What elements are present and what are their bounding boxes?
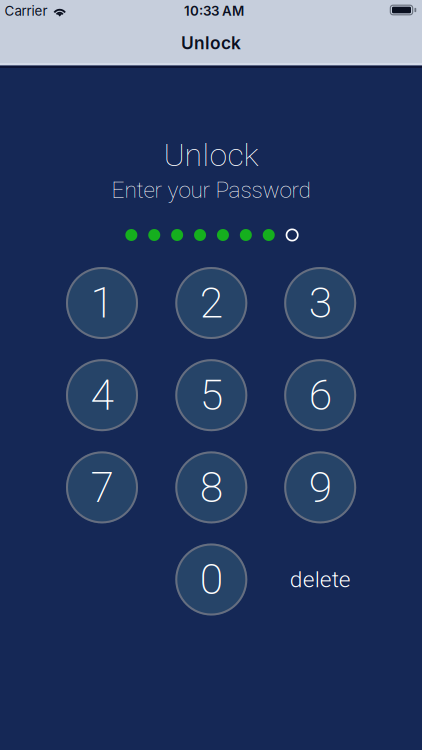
staticText: 6	[309, 370, 332, 420]
button[interactable]: 8	[175, 451, 247, 523]
staticText: 7	[90, 462, 113, 512]
staticText: 5	[200, 370, 223, 420]
button[interactable]: 3	[284, 267, 356, 339]
button[interactable]: 7	[66, 451, 138, 523]
staticText: 9	[309, 462, 332, 512]
staticText: 10:33 AM	[184, 3, 244, 19]
button[interactable]: 0	[175, 543, 247, 615]
button[interactable]: 5	[175, 359, 247, 431]
staticText: Enter your Password	[111, 177, 310, 203]
button[interactable]: 2	[175, 267, 247, 339]
button[interactable]: 9	[284, 451, 356, 523]
staticText: Unlock	[181, 32, 241, 53]
button[interactable]: delete	[270, 544, 370, 614]
staticText: 4	[90, 370, 113, 420]
button[interactable]: 6	[284, 359, 356, 431]
button[interactable]: 1	[66, 267, 138, 339]
staticText: 3	[309, 278, 332, 328]
button[interactable]: 4	[66, 359, 138, 431]
staticText: 2	[200, 278, 223, 328]
staticText: delete	[290, 566, 351, 593]
staticText: 1	[90, 278, 113, 328]
staticText: 8	[200, 462, 223, 512]
staticText: Carrier	[4, 3, 47, 19]
staticText: 0	[200, 554, 223, 604]
staticText: Unlock	[163, 136, 258, 174]
